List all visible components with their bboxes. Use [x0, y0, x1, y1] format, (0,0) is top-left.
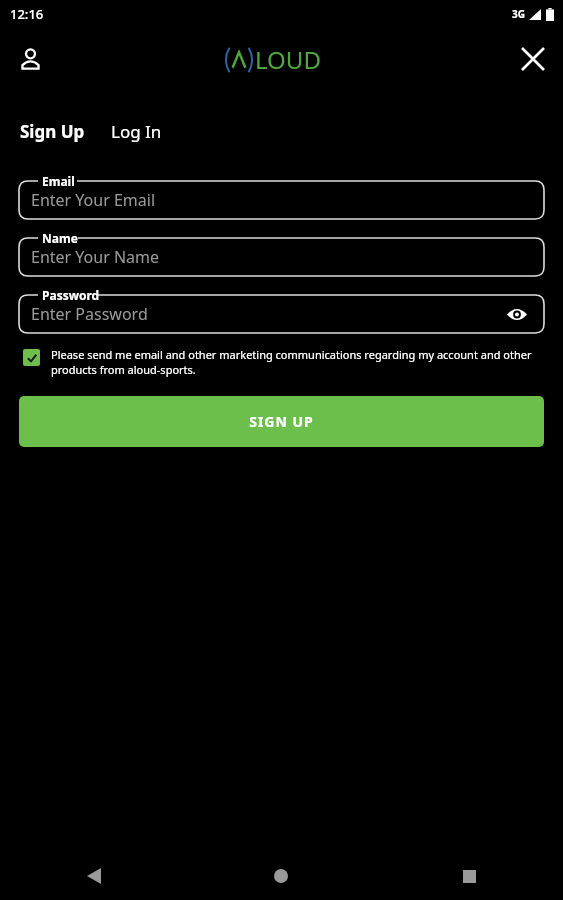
staticText: 3G: [512, 7, 525, 21]
staticText: SIGN UP: [249, 412, 314, 431]
button[interactable]: Show password: [504, 301, 530, 327]
button[interactable]: Recent apps: [375, 852, 563, 900]
button[interactable]: Log In: [109, 116, 164, 147]
button[interactable]: SIGN UP: [19, 396, 544, 447]
staticText: Enter Your Name: [31, 246, 160, 268]
button[interactable]: Back: [0, 852, 187, 900]
staticText: Enter Password: [31, 303, 148, 325]
staticText: Please send me email and other marketing…: [51, 347, 545, 377]
button[interactable]: Account: [10, 39, 50, 79]
button[interactable]: Home: [187, 852, 375, 900]
staticText: Enter Your Email: [31, 189, 156, 211]
button[interactable]: Close: [513, 39, 553, 79]
staticText: Log In: [111, 120, 162, 143]
staticText: LOUD: [255, 43, 321, 76]
staticText: 12:16: [10, 5, 44, 23]
button[interactable]: Sign Up: [18, 116, 87, 147]
staticText: Password: [42, 287, 100, 303]
staticText: Email: [42, 173, 75, 189]
staticText: Name: [42, 230, 78, 246]
button[interactable]: Please send me email and other marketing…: [23, 347, 545, 377]
staticText: Sign Up: [20, 120, 85, 143]
